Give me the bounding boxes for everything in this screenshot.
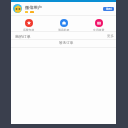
button[interactable]: 微信用户 xyxy=(11,2,116,14)
button[interactable]: 酒店机票 xyxy=(46,15,81,31)
button[interactable]: Sign in xyxy=(103,7,114,11)
button[interactable]: 我的订单 xyxy=(11,32,116,39)
button[interactable]: 生活缴费 xyxy=(81,15,116,31)
staticText: 微信用户 xyxy=(25,5,42,10)
staticText: 签到 xyxy=(106,7,112,11)
staticText: 暂无订单 xyxy=(59,41,74,46)
staticText: 酒店机票 xyxy=(58,28,70,31)
staticText: 我的订单 xyxy=(15,34,31,39)
staticText: 生活缴费 xyxy=(93,28,105,31)
staticText: 话费充值 xyxy=(23,28,35,31)
staticText: 更多 xyxy=(107,34,114,38)
button[interactable]: 话费充值 xyxy=(11,15,46,31)
